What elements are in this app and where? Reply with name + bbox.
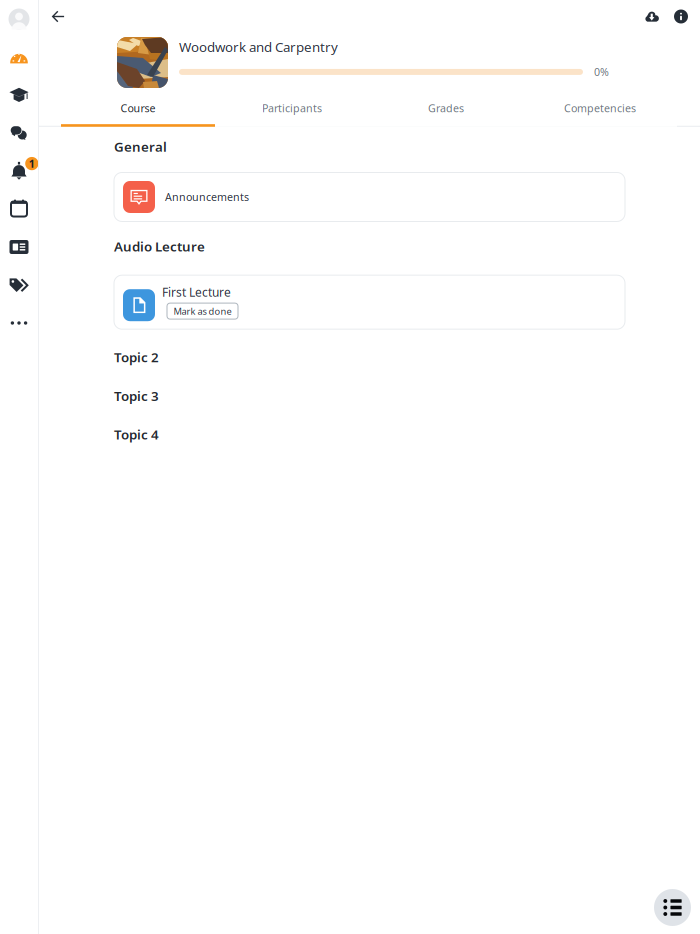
button[interactable]: Competencies: [523, 101, 677, 127]
staticText: Topic 2: [114, 348, 159, 366]
staticText: Woodwork and Carpentry: [179, 38, 338, 56]
staticText: Topic 3: [114, 387, 159, 405]
button[interactable]: Back: [43, 0, 73, 33]
staticText: Competencies: [564, 101, 636, 115]
staticText: Participants: [262, 101, 322, 115]
button[interactable]: Calendar: [0, 190, 38, 228]
staticText: Course: [120, 101, 155, 115]
button[interactable]: My courses: [0, 76, 38, 114]
button[interactable]: Course: [61, 101, 215, 127]
staticText: Audio Lecture: [114, 237, 205, 255]
staticText: First Lecture: [162, 284, 231, 300]
staticText: General: [114, 138, 167, 155]
button[interactable]: More: [0, 304, 38, 342]
staticText: Topic 4: [114, 426, 159, 443]
button[interactable]: Download course: [639, 0, 665, 33]
button[interactable]: Tags: [0, 266, 38, 304]
button[interactable]: Dashboard: [0, 38, 38, 76]
button[interactable]: Contacts: [0, 228, 38, 266]
button[interactable]: Participants: [215, 101, 369, 127]
button[interactable]: Mark as done: [167, 303, 238, 319]
staticText: 0%: [594, 65, 609, 79]
button[interactable]: Course summary: [668, 0, 694, 33]
button[interactable]: Profile: [0, 0, 38, 38]
button[interactable]: Grades: [369, 101, 523, 127]
staticText: 1: [29, 156, 35, 171]
staticText: Mark as done: [173, 305, 231, 317]
staticText: Grades: [428, 101, 464, 115]
button[interactable]: Course index: [654, 889, 691, 926]
staticText: Announcements: [165, 190, 249, 204]
button[interactable]: Notifications: [0, 152, 38, 190]
button[interactable]: Messages: [0, 114, 38, 152]
